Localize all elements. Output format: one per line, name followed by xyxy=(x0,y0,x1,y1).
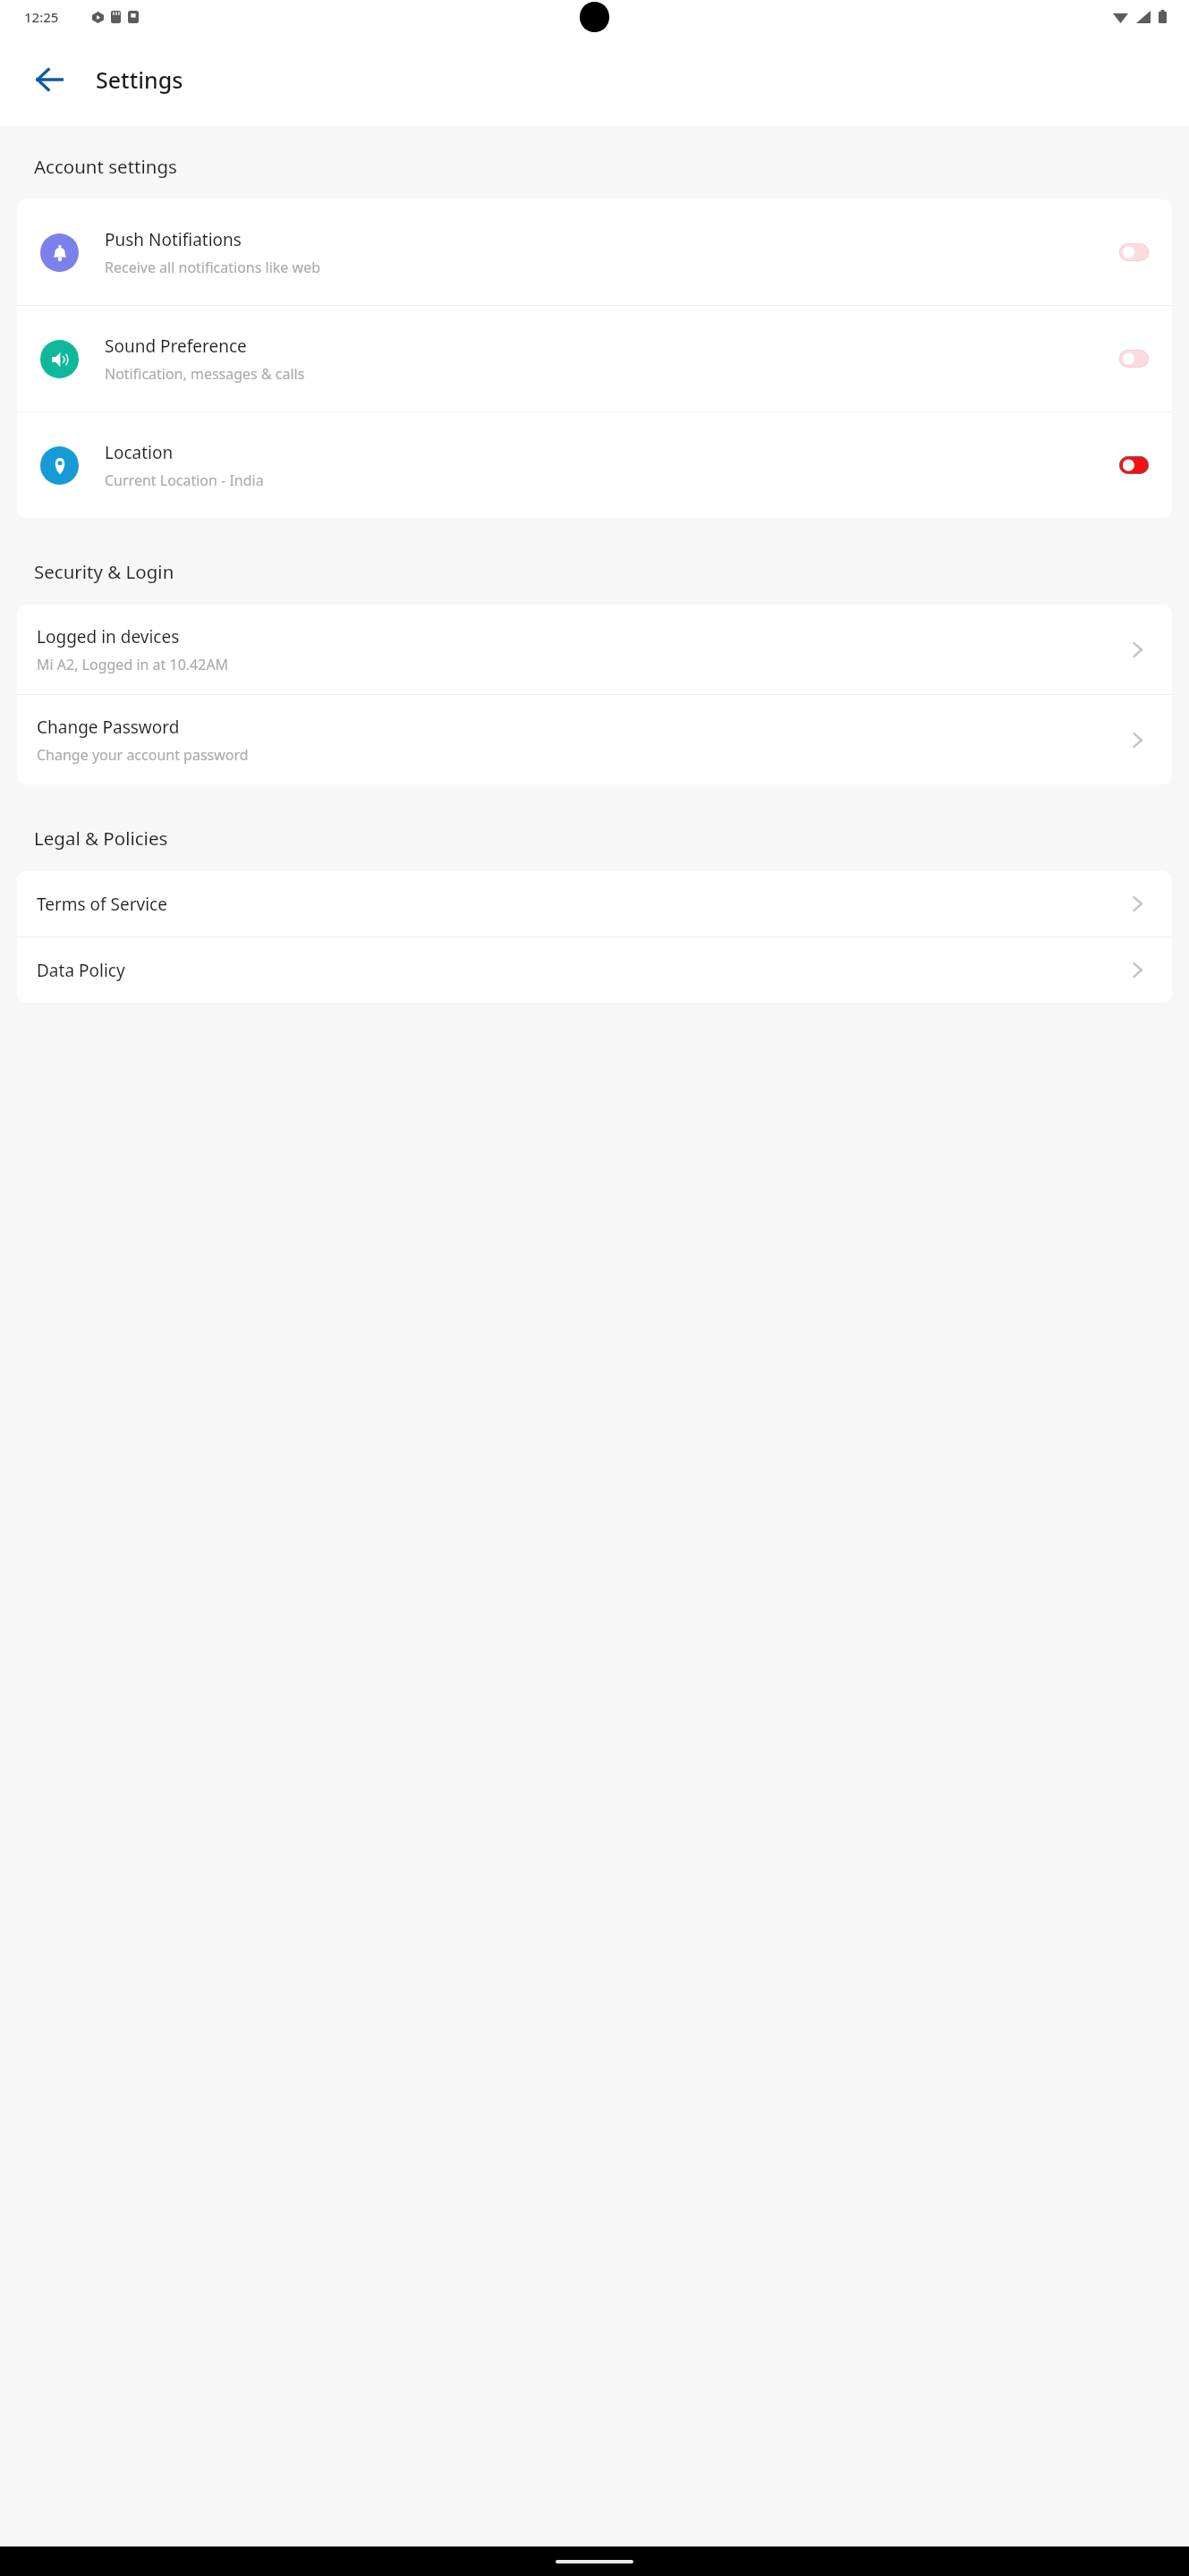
staticText: Notification, messages & calls xyxy=(105,364,305,384)
button[interactable]: Location on xyxy=(1119,456,1149,474)
button[interactable]: Setting off xyxy=(1119,350,1149,368)
staticText: Location xyxy=(105,441,174,464)
staticText: Account settings xyxy=(34,154,177,179)
staticText: Receive all notifications like web xyxy=(105,258,320,277)
staticText: Settings xyxy=(96,64,183,95)
staticText: Current Location - India xyxy=(105,470,264,490)
staticText: Push Notifiations xyxy=(105,228,242,251)
staticText: Legal & Policies xyxy=(34,826,168,851)
staticText: 12:25 xyxy=(24,8,59,26)
staticText: Mi A2, Logged in at 10.42AM xyxy=(37,655,229,674)
staticText: Logged in devices xyxy=(37,625,180,648)
button[interactable]: Data Policy xyxy=(17,937,1172,1003)
staticText: Security & Login xyxy=(34,559,174,584)
button[interactable]: Logged in devices xyxy=(17,605,1172,694)
button[interactable]: Sound Preference xyxy=(17,306,1172,411)
button[interactable]: Location xyxy=(17,412,1172,518)
staticText: Sound Preference xyxy=(105,335,247,358)
button[interactable]: Setting off xyxy=(1119,243,1149,261)
button[interactable]: Change Password xyxy=(17,695,1172,784)
staticText: Data Policy xyxy=(37,959,125,982)
staticText: Terms of Service xyxy=(37,893,167,916)
button[interactable]: Terms of Service xyxy=(17,871,1172,936)
button[interactable]: Push Notifiations xyxy=(17,199,1172,305)
staticText: Change your account password xyxy=(37,745,249,765)
staticText: Change Password xyxy=(37,716,180,739)
button[interactable]: Back xyxy=(25,55,73,104)
